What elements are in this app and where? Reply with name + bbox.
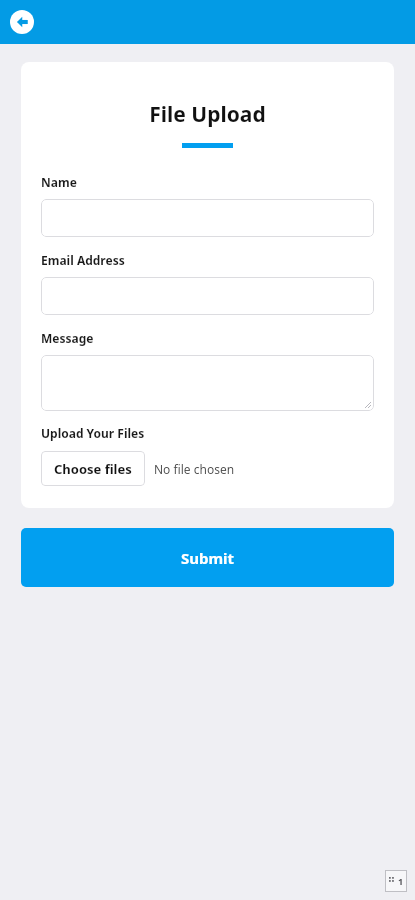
staticText: Email Address [41,252,125,268]
staticText: Upload Your Files [41,425,145,441]
staticText: No file chosen [154,461,235,477]
button[interactable]: Choose files [41,451,145,486]
staticText: Message [41,330,94,346]
button[interactable]: Submit [21,528,394,587]
staticText: 1 [398,875,404,887]
staticText: Choose files [54,460,132,478]
button[interactable]: Text field [41,199,374,237]
button[interactable]: Back [8,8,36,36]
button[interactable]: Workspace [385,870,407,892]
button[interactable]: Message text area [41,355,374,411]
staticText: File Upload [41,100,374,129]
button[interactable]: Text field [41,277,374,315]
staticText: Name [41,174,77,190]
staticText: Submit [181,548,235,568]
